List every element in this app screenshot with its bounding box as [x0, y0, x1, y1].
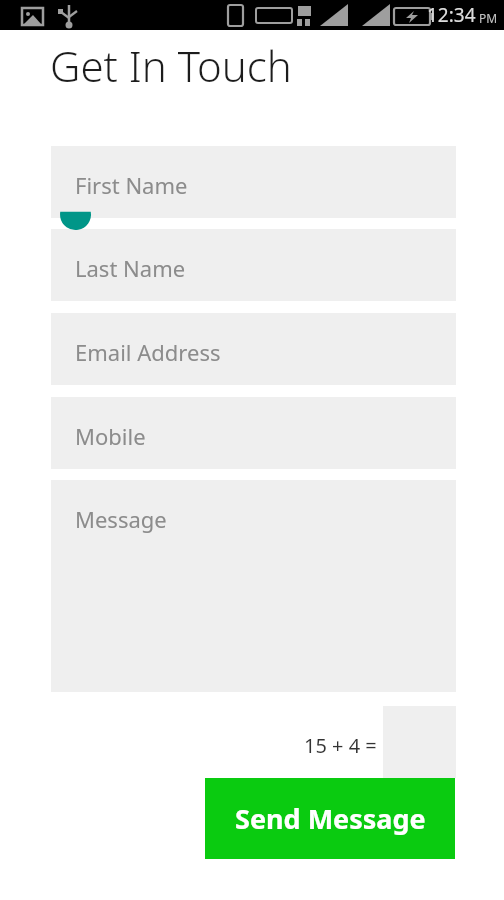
- button[interactable]: Mobile: [51, 397, 456, 469]
- staticText: Mobile: [75, 421, 146, 451]
- staticText: Last Name: [75, 253, 186, 283]
- button[interactable]: Email Address: [51, 313, 456, 385]
- staticText: Email Address: [75, 337, 221, 367]
- button[interactable]: Last Name: [51, 229, 456, 301]
- button[interactable]: First Name: [51, 146, 456, 218]
- staticText: 12:34: [427, 2, 476, 28]
- staticText: First Name: [75, 170, 188, 200]
- staticText: Get In Touch: [50, 37, 292, 94]
- staticText: 15 + 4 =: [304, 732, 377, 759]
- staticText: Message: [75, 504, 167, 534]
- staticText: Send Message: [235, 800, 426, 837]
- button[interactable]: Message: [51, 480, 456, 692]
- staticText: PM: [479, 10, 498, 26]
- other: Text cursor handle: [60, 197, 91, 230]
- button[interactable]: Send Message: [205, 778, 455, 859]
